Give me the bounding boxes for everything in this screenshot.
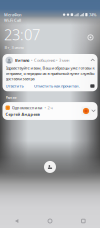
staticText: Сергей Андреев (5, 112, 39, 117)
button[interactable]: Clear all notifications (43, 160, 57, 174)
staticText: Отметить как прочитан. (34, 83, 80, 89)
staticText: Одноклассники (12, 105, 43, 110)
staticText: 23:07 (4, 25, 40, 44)
staticText: Wi-Fi Call (4, 17, 21, 23)
button[interactable]: Recents (67, 219, 100, 223)
staticText: • 2 ч (44, 105, 52, 110)
staticText: МегаФон (4, 12, 22, 17)
staticText: Вт, 3 июня (4, 45, 23, 50)
staticText: Ответить (5, 83, 23, 89)
button[interactable]: Одноклассники (2, 102, 97, 120)
staticText: Здравствуйте и вам, Ваши образцы уже гот… (5, 65, 94, 81)
staticText: Ранее (5, 95, 16, 100)
staticText: 74% (89, 12, 96, 17)
button[interactable]: Виталя (2, 54, 97, 91)
button[interactable]: Back (0, 219, 33, 223)
button[interactable]: Settings (86, 33, 95, 42)
staticText: • Сообщения • 3 мин (31, 58, 69, 63)
button[interactable]: Home (33, 219, 67, 223)
staticText: Виталя (15, 58, 29, 63)
